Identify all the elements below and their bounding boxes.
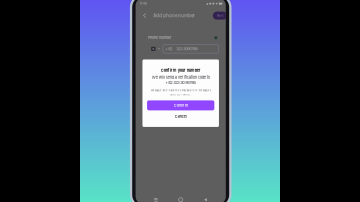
button[interactable]: Back: [201, 196, 210, 202]
staticText: Confirm your number: [161, 68, 201, 73]
staticText: sent by Twilio.: [170, 93, 191, 96]
button[interactable]: Recent apps: [151, 196, 160, 202]
staticText: Cancel: [175, 114, 187, 119]
staticText: Confirm: [174, 103, 188, 108]
staticText: Next: [216, 14, 223, 17]
staticText: 11:46: [140, 2, 147, 5]
staticText: We will send a verification code to: [152, 75, 210, 80]
staticText: Add phone number: [153, 13, 195, 18]
button[interactable]: Next: [213, 12, 227, 20]
button[interactable]: Confirm: [147, 100, 214, 110]
button[interactable]: Home: [176, 196, 185, 202]
button[interactable]: Cancel: [147, 110, 214, 122]
staticText: Message and data fees may apply to messa…: [151, 89, 211, 92]
staticText: Phone number: [148, 35, 171, 40]
staticText: +82 323 3095789: [165, 46, 197, 51]
button[interactable]: Back: [140, 10, 149, 21]
staticText: +82 323 3095789.: [165, 80, 196, 85]
